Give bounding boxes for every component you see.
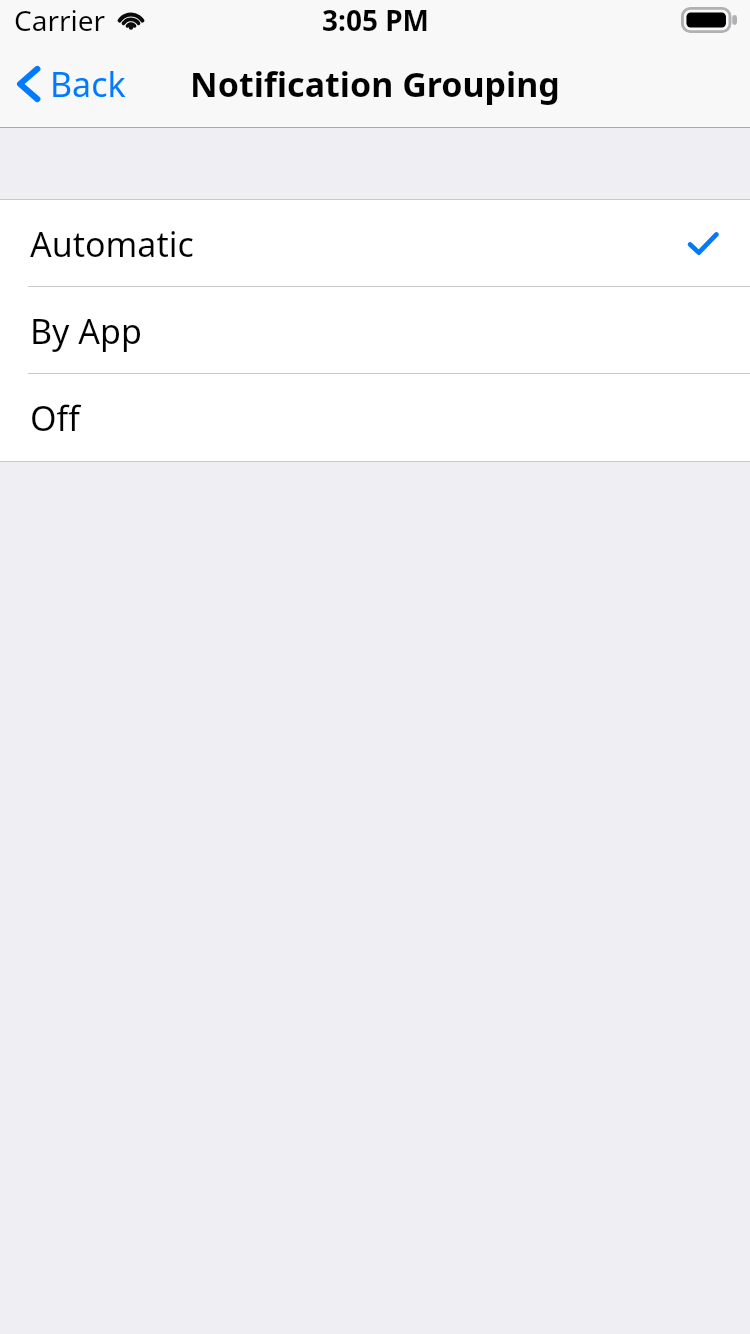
button[interactable]: Off [0, 374, 750, 461]
staticText: Notification Grouping [190, 61, 560, 107]
staticText: Automatic [30, 221, 194, 267]
staticText: By App [30, 308, 142, 354]
staticText: 3:05 PM [322, 1, 429, 39]
button[interactable]: Automatic [0, 200, 750, 287]
staticText: Back [50, 61, 126, 107]
staticText: Off [30, 395, 80, 441]
button[interactable]: Back [0, 40, 144, 128]
button[interactable]: By App [0, 287, 750, 374]
staticText: Carrier [14, 1, 106, 39]
